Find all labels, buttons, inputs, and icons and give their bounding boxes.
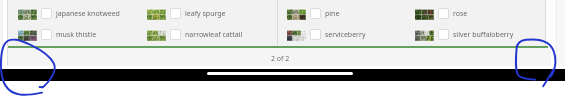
staticText: musk thistle [56,30,97,40]
button[interactable]: Home gesture bar [207,72,353,75]
button[interactable]: Select musk thistle [41,29,52,40]
staticText: silver buffaloberry [453,30,514,40]
staticText: pine [325,9,340,19]
button[interactable]: Select silver buffaloberry [415,28,514,41]
button[interactable]: Select rose [438,8,449,19]
staticText: narrowleaf cattail [185,30,243,40]
button[interactable]: Select rose [415,7,468,20]
button[interactable]: Select serviceberry [287,28,366,41]
button[interactable]: Select musk thistle [18,28,97,41]
staticText: 2 of 2 [271,54,290,64]
button[interactable]: Select pine [310,8,321,19]
button[interactable]: 2 of 2 [271,54,290,64]
button[interactable]: Select japanese knotweed [41,8,52,19]
button[interactable]: Select serviceberry [310,29,321,40]
button[interactable]: Select leafy spurge [170,8,181,19]
staticText: rose [453,9,468,19]
button[interactable]: Select pine [287,7,340,20]
staticText: leafy spurge [185,9,226,19]
button[interactable]: Select silver buffaloberry [438,29,449,40]
staticText: serviceberry [325,30,366,40]
button[interactable]: Select narrowleaf cattail [170,29,181,40]
button[interactable]: Select japanese knotweed [18,7,120,20]
button[interactable]: Select narrowleaf cattail [147,28,243,41]
staticText: japanese knotweed [56,9,120,19]
button[interactable]: Select leafy spurge [147,7,226,20]
